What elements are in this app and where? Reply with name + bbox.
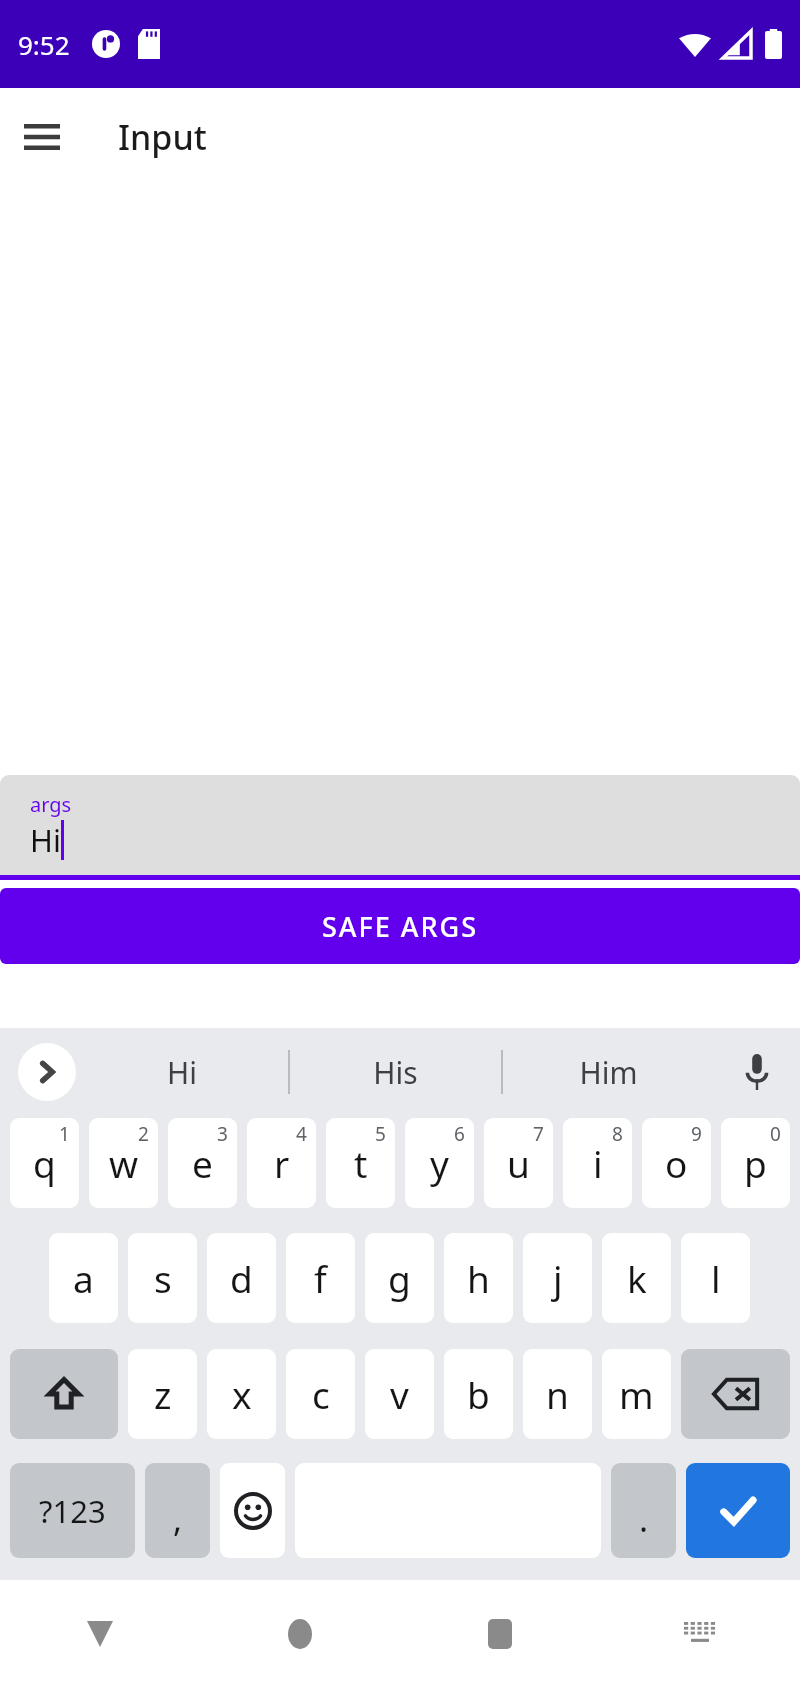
button[interactable]: Hi — [76, 1028, 288, 1116]
button[interactable]: u — [484, 1118, 553, 1208]
staticText: 7 — [533, 1121, 544, 1147]
staticText: Input — [118, 114, 207, 160]
staticText: 3 — [217, 1121, 228, 1147]
button[interactable]: Emoji — [220, 1463, 285, 1558]
button[interactable]: ?123 — [10, 1463, 135, 1558]
button[interactable]: j — [523, 1233, 592, 1323]
button[interactable]: k — [602, 1233, 671, 1323]
staticText: k — [627, 1253, 647, 1303]
button[interactable]: Backspace — [681, 1349, 790, 1439]
staticText: n — [546, 1369, 569, 1419]
staticText: 0 — [770, 1121, 781, 1147]
button[interactable]: v — [365, 1349, 434, 1439]
button[interactable]: g — [365, 1233, 434, 1323]
staticText: Him — [579, 1052, 638, 1093]
staticText: 1 — [59, 1121, 70, 1147]
staticText: y — [430, 1138, 449, 1188]
staticText: u — [507, 1138, 530, 1188]
staticText: 4 — [296, 1121, 307, 1147]
staticText: . — [639, 1496, 649, 1542]
button[interactable]: d — [207, 1233, 276, 1323]
button[interactable]: f — [286, 1233, 355, 1323]
button[interactable]: SAFE ARGS — [0, 888, 800, 964]
button[interactable]: w — [89, 1118, 158, 1208]
staticText: f — [314, 1253, 327, 1303]
button[interactable]: i — [563, 1118, 632, 1208]
button[interactable]: h — [444, 1233, 513, 1323]
staticText: r — [274, 1138, 290, 1188]
staticText: t — [354, 1138, 368, 1188]
staticText: Hi — [30, 819, 61, 861]
staticText: d — [230, 1253, 253, 1303]
staticText: 2 — [138, 1121, 149, 1147]
button[interactable]: Recents — [400, 1580, 600, 1688]
staticText: s — [154, 1253, 172, 1303]
staticText: 9:52 — [18, 27, 70, 62]
button[interactable]: z — [128, 1349, 197, 1439]
staticText: His — [373, 1052, 418, 1093]
button[interactable]: Voice input — [714, 1028, 800, 1116]
button[interactable]: More suggestions — [18, 1043, 76, 1101]
staticText: 6 — [454, 1121, 465, 1147]
button[interactable]: His — [290, 1028, 501, 1116]
staticText: g — [388, 1253, 411, 1303]
staticText: c — [312, 1369, 330, 1419]
button[interactable]: n — [523, 1349, 592, 1439]
button[interactable]: Done — [686, 1463, 790, 1558]
button[interactable]: r — [247, 1118, 316, 1208]
button[interactable]: . — [611, 1463, 676, 1558]
staticText: p — [744, 1138, 767, 1188]
staticText: o — [665, 1138, 688, 1188]
button[interactable]: e — [168, 1118, 237, 1208]
staticText: x — [232, 1369, 252, 1419]
button[interactable]: c — [286, 1349, 355, 1439]
staticText: 9 — [691, 1121, 702, 1147]
staticText: , — [173, 1496, 183, 1542]
button[interactable]: m — [602, 1349, 671, 1439]
staticText: ?123 — [39, 1490, 106, 1532]
button[interactable]: Him — [503, 1028, 714, 1116]
button[interactable]: p — [721, 1118, 790, 1208]
button[interactable]: Switch keyboard — [600, 1580, 800, 1688]
staticText: v — [390, 1369, 409, 1419]
staticText: j — [553, 1253, 563, 1303]
staticText: e — [192, 1138, 213, 1188]
staticText: 8 — [612, 1121, 623, 1147]
staticText: h — [467, 1253, 490, 1303]
button[interactable]: a — [49, 1233, 118, 1323]
button[interactable]: s — [128, 1233, 197, 1323]
button[interactable]: y — [405, 1118, 474, 1208]
staticText: Hi — [167, 1052, 197, 1093]
staticText: a — [73, 1253, 94, 1303]
button[interactable]: l — [681, 1233, 750, 1323]
button[interactable]: x — [207, 1349, 276, 1439]
button[interactable]: Menu — [12, 107, 72, 167]
staticText: m — [619, 1369, 654, 1419]
staticText: b — [467, 1369, 490, 1419]
button[interactable]: q — [10, 1118, 79, 1208]
staticText: args — [30, 791, 72, 818]
staticText: q — [33, 1138, 56, 1188]
button[interactable]: Home — [200, 1580, 400, 1688]
button[interactable]: t — [326, 1118, 395, 1208]
staticText: SAFE ARGS — [322, 908, 479, 945]
staticText: 5 — [375, 1121, 386, 1147]
button[interactable]: args — [0, 775, 800, 875]
button[interactable]: o — [642, 1118, 711, 1208]
button[interactable]: , — [145, 1463, 210, 1558]
staticText: i — [593, 1138, 603, 1188]
staticText: z — [154, 1369, 172, 1419]
button[interactable]: Shift — [10, 1349, 118, 1439]
staticText: l — [711, 1253, 721, 1303]
button[interactable]: Back — [0, 1580, 200, 1688]
button[interactable]: b — [444, 1349, 513, 1439]
staticText: w — [109, 1138, 139, 1188]
